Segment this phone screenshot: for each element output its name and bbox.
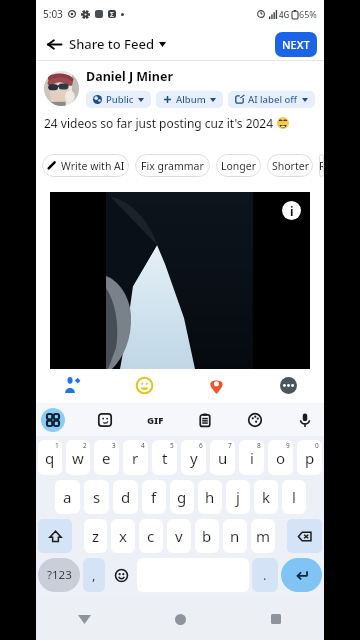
staticText: l [292, 487, 296, 507]
button[interactable]: Back [41, 31, 67, 57]
button[interactable]: Clipboard [193, 408, 217, 432]
button[interactable]: f [142, 480, 166, 514]
staticText: Daniel J Miner [86, 68, 174, 85]
button[interactable]: Check in [180, 371, 252, 399]
button[interactable]: Emoji [108, 558, 134, 592]
staticText: 1 [55, 441, 59, 450]
staticText: h [205, 487, 215, 507]
staticText: d [121, 487, 131, 507]
button[interactable]: w [66, 440, 90, 475]
button[interactable]: j [226, 480, 250, 514]
button[interactable]: Shorter [267, 154, 313, 177]
button[interactable]: Longer [216, 154, 261, 177]
button[interactable]: p [297, 440, 322, 475]
button[interactable]: Back [36, 598, 132, 640]
button[interactable]: Shift [38, 519, 72, 553]
button[interactable]: k [254, 480, 278, 514]
button[interactable]: Home [132, 598, 228, 640]
button[interactable]: Info [282, 201, 301, 220]
staticText: 7 [228, 441, 232, 450]
button[interactable]: , [83, 558, 105, 592]
button[interactable]: GIF [143, 408, 167, 432]
button[interactable]: o [268, 440, 293, 475]
button[interactable]: Backspace [287, 519, 322, 553]
button[interactable]: Public [86, 91, 151, 108]
staticText: e [102, 448, 111, 468]
button[interactable]: Album [156, 91, 223, 108]
button[interactable]: s [84, 480, 109, 514]
button[interactable]: n [223, 519, 247, 553]
button[interactable]: l [282, 480, 306, 514]
staticText: k [262, 487, 271, 507]
staticText: 5:03 [43, 7, 63, 21]
staticText: a [63, 487, 72, 507]
staticText: f [151, 487, 157, 507]
staticText: i [290, 203, 294, 219]
button[interactable]: m [251, 519, 275, 553]
button[interactable]: i [239, 440, 264, 475]
button[interactable]: g [170, 480, 194, 514]
button[interactable]: Re [319, 154, 324, 177]
staticText: ?123 [47, 567, 72, 583]
staticText: s [93, 487, 101, 507]
button[interactable]: c [139, 519, 163, 553]
button[interactable]: e [94, 440, 119, 475]
button[interactable]: y [181, 440, 206, 475]
staticText: q [45, 448, 55, 468]
button[interactable]: d [113, 480, 138, 514]
button[interactable]: Fix grammar [135, 154, 210, 177]
staticText: Longer [221, 159, 257, 173]
button[interactable]: Keyboard apps [41, 408, 65, 432]
staticText: r [132, 448, 139, 468]
staticText: . [263, 566, 267, 584]
staticText: 3 [112, 441, 116, 450]
button[interactable]: Feeling / activity [108, 371, 180, 399]
staticText: 24 videos so far just posting cuz it's 2… [44, 115, 274, 131]
button[interactable]: b [195, 519, 219, 553]
button[interactable]: NEXT [275, 32, 317, 57]
button[interactable]: t [152, 440, 177, 475]
staticText: m [256, 526, 271, 546]
button[interactable]: u [210, 440, 235, 475]
staticText: y [190, 448, 198, 468]
button[interactable]: AI label off [228, 91, 315, 108]
staticText: z [92, 526, 100, 546]
button[interactable]: Stickers [93, 408, 117, 432]
button[interactable]: More options [252, 371, 324, 399]
staticText: 6 [199, 441, 203, 450]
button[interactable]: Profile photo [44, 71, 79, 106]
button[interactable]: . [252, 558, 278, 592]
button[interactable]: r [123, 440, 148, 475]
button[interactable]: Recents [228, 598, 324, 640]
staticText: t [162, 448, 168, 468]
staticText: 4 [141, 441, 145, 450]
staticText: v [175, 526, 183, 546]
staticText: , [92, 566, 96, 584]
staticText: w [72, 448, 84, 468]
button[interactable]: Voice input [293, 408, 317, 432]
staticText: AI label off [248, 93, 298, 106]
staticText: 5 [170, 441, 174, 450]
button[interactable]: Tag people [36, 371, 108, 399]
staticText: x [119, 526, 127, 546]
staticText: Re [319, 159, 324, 173]
staticText: 8 [257, 441, 261, 450]
button[interactable]: h [198, 480, 222, 514]
button[interactable]: Share to Feed [69, 31, 166, 57]
button[interactable]: x [111, 519, 135, 553]
button[interactable]: Write with AI [42, 154, 129, 177]
button[interactable]: v [167, 519, 191, 553]
staticText: Public [106, 93, 134, 106]
staticText: 4G [279, 9, 290, 20]
button[interactable]: Themes [243, 408, 267, 432]
button[interactable]: q [38, 440, 62, 475]
button[interactable]: Enter [281, 558, 322, 592]
button[interactable]: z [84, 519, 107, 553]
staticText: g [177, 487, 187, 507]
button[interactable]: ?123 [38, 558, 80, 592]
staticText: 9 [286, 441, 290, 450]
staticText: Write with AI [61, 159, 125, 173]
staticText: p [305, 448, 315, 468]
button[interactable]: a [55, 480, 80, 514]
